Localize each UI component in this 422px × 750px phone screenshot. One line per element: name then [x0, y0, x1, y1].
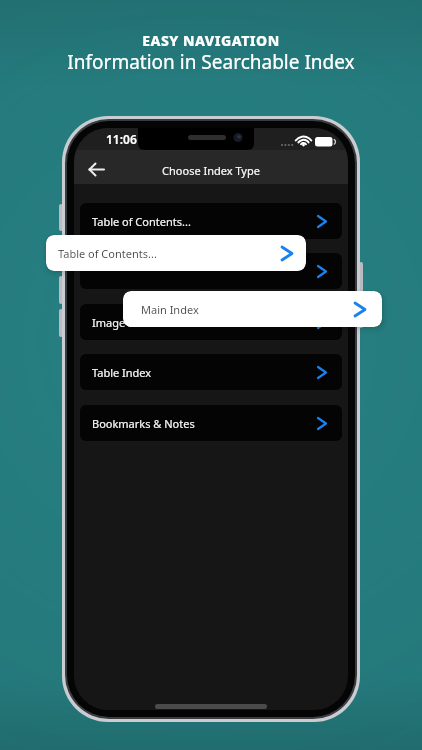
- button[interactable]: Table Index: [80, 354, 342, 390]
- staticText: Table of Contents...: [92, 214, 191, 229]
- button[interactable]: Image Index: [80, 304, 342, 340]
- staticText: Choose Index Type: [74, 163, 348, 178]
- staticText: 11:06: [106, 131, 137, 147]
- button[interactable]: [80, 253, 342, 289]
- staticText: Table of Contents...: [58, 246, 157, 261]
- button[interactable]: Main Index: [123, 291, 382, 327]
- staticText: EASY NAVIGATION: [0, 31, 422, 50]
- staticText: Main Index: [141, 302, 199, 317]
- staticText: Image Index: [92, 315, 158, 330]
- staticText: Table Index: [92, 365, 152, 380]
- staticText: Information in Searchable Index: [0, 49, 422, 75]
- staticText: Bookmarks & Notes: [92, 416, 195, 431]
- button[interactable]: Table of Contents...: [80, 203, 342, 239]
- button[interactable]: Table of Contents...: [46, 235, 306, 271]
- button[interactable]: Bookmarks & Notes: [80, 405, 342, 441]
- button[interactable]: [89, 163, 104, 176]
